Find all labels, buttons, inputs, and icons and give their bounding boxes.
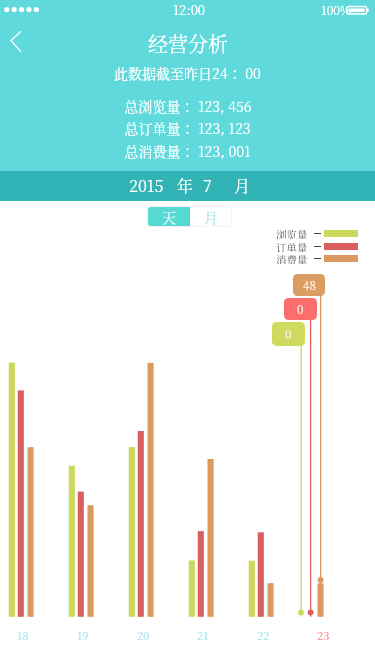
button[interactable]: 21 [193,627,213,643]
button[interactable]: 0 [272,322,305,346]
staticText: 48 [303,277,316,294]
staticText: 月 [204,207,218,226]
staticText: 天 [162,207,176,226]
staticText: 18 [17,627,29,643]
staticText: 2015 [129,174,164,197]
staticText: 总消费量： 123, 001 [124,141,251,161]
staticText: 20 [137,627,150,643]
button[interactable]: 订单量 [276,240,358,252]
staticText: 100% [321,1,352,18]
staticText: 此数据截至昨日24： 00 [114,63,261,83]
button[interactable]: 天 [148,207,190,226]
button[interactable]: 消费量 [276,252,358,264]
staticText: 19 [77,627,89,643]
button[interactable]: 月 [190,207,231,226]
staticText: 经营分析 [148,29,228,58]
staticText: 年 [177,174,194,197]
button[interactable]: 2015 [0,171,375,201]
staticText: 总浏览量： 123, 456 [124,96,252,116]
staticText: 月 [234,174,251,197]
staticText: 总订单量： 123, 123 [124,118,251,138]
button[interactable]: 0 [284,298,317,320]
button[interactable]: 22 [253,627,273,643]
button[interactable]: 19 [73,627,93,643]
staticText: 7 [203,174,212,197]
button[interactable]: 浏览量 [276,227,358,239]
staticText: 订单量 [276,240,308,252]
button[interactable]: 48 [293,274,325,296]
staticText: 21 [197,627,209,643]
staticText: 浏览量 [276,227,308,239]
staticText: 22 [257,627,270,643]
button[interactable]: Back [0,21,42,61]
staticText: 12:00 [173,0,206,19]
staticText: 0 [285,326,292,343]
button[interactable]: 20 [133,627,153,643]
staticText: 0 [297,301,304,318]
button[interactable]: 23 [313,627,333,643]
button[interactable]: 18 [13,627,33,643]
staticText: 消费量 [276,252,308,264]
staticText: 23 [317,627,330,643]
